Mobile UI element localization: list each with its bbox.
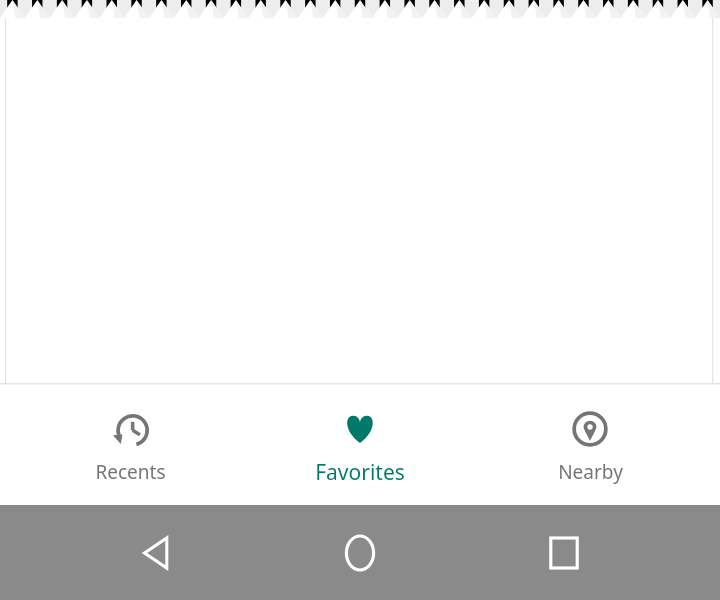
staticText: Recents — [95, 459, 166, 485]
button[interactable]: Favorites — [260, 392, 460, 497]
staticText: Favorites — [315, 458, 405, 487]
button[interactable]: Recents — [30, 393, 230, 495]
button[interactable]: Home — [312, 505, 408, 600]
button[interactable]: Back — [108, 505, 204, 600]
button[interactable]: Nearby — [490, 393, 690, 495]
button[interactable]: Recent apps — [516, 505, 612, 600]
staticText: Nearby — [558, 459, 623, 485]
